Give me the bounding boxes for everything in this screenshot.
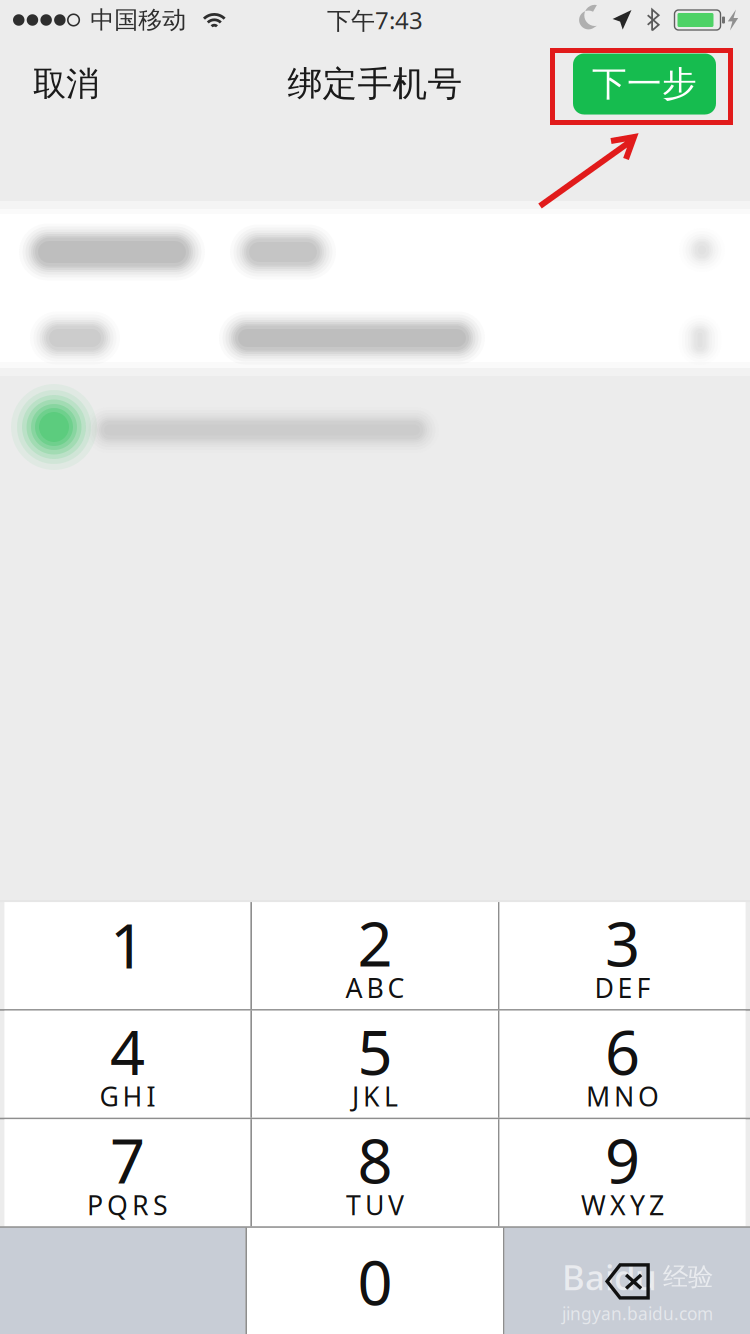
staticText: 7: [110, 1119, 145, 1200]
button[interactable]: 下一步: [573, 53, 716, 114]
button[interactable]: 取消: [0, 45, 132, 122]
button[interactable]: 8: [252, 1119, 498, 1226]
staticText: 8: [357, 1119, 392, 1200]
staticText: A B C: [345, 970, 404, 1005]
staticText: jingyan.baidu.com: [562, 1302, 713, 1325]
staticText: J K L: [352, 1078, 398, 1114]
button[interactable]: 1: [4, 902, 250, 1009]
button[interactable]: 0: [247, 1228, 503, 1334]
staticText: G H I: [99, 1078, 155, 1114]
staticText: 4: [110, 1010, 145, 1092]
staticText: 6: [605, 1010, 640, 1092]
staticText: 中国移动: [90, 5, 186, 35]
staticText: 9: [605, 1119, 640, 1200]
staticText: 0: [357, 1241, 392, 1322]
button[interactable]: Delete: [505, 1228, 750, 1334]
staticText: 绑定手机号: [287, 63, 462, 105]
staticText: 5: [357, 1010, 392, 1092]
staticText: 下一步: [592, 63, 697, 105]
button[interactable]: 3: [500, 902, 746, 1009]
staticText: 经验: [663, 1261, 713, 1292]
staticText: 取消: [33, 63, 99, 104]
button[interactable]: 6: [500, 1011, 746, 1118]
staticText: 1: [110, 904, 145, 985]
staticText: M N O: [586, 1078, 659, 1114]
staticText: 下午7:43: [327, 4, 423, 36]
button[interactable]: 5: [252, 1011, 498, 1118]
button[interactable]: 7: [4, 1119, 250, 1226]
staticText: 2: [357, 902, 392, 983]
button[interactable]: 9: [500, 1119, 746, 1226]
button[interactable]: 4: [4, 1011, 250, 1118]
staticText: P Q R S: [87, 1187, 168, 1222]
button[interactable]: 2: [252, 902, 498, 1009]
staticText: T U V: [346, 1187, 404, 1222]
staticText: 3: [605, 902, 640, 983]
staticText: W X Y Z: [581, 1187, 664, 1222]
staticText: Baidu: [562, 1254, 657, 1300]
staticText: D E F: [595, 970, 651, 1005]
